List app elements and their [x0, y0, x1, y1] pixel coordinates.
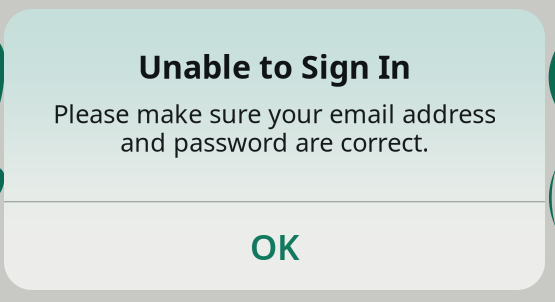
button[interactable]: OK: [4, 203, 545, 290]
staticText: Unable to Sign In: [138, 45, 411, 87]
staticText: OK: [250, 223, 299, 269]
staticText: Please make sure your email address and …: [53, 96, 496, 159]
